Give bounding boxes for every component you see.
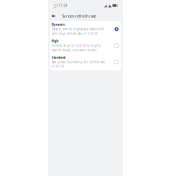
staticText: with a top refresh rate of 120 Hz: [52, 32, 98, 35]
staticText: smooth visuals, uses more power: [52, 48, 97, 52]
staticText: Refresh at up to 144 Hz for highly: [52, 44, 101, 47]
staticText: Standard: [52, 56, 66, 59]
staticText: 💬 11:28: [53, 3, 67, 7]
button[interactable]: Back: [51, 12, 57, 20]
staticText: Screen refresh rate: [62, 13, 96, 19]
button[interactable]: Standard: [50, 54, 121, 70]
button[interactable]: Dynamic: [50, 21, 121, 37]
staticText: Save power by limiting the refresh rate: [52, 60, 106, 64]
staticText: Dynamic: [52, 23, 65, 27]
staticText: High: [52, 39, 59, 43]
staticText: to 60 Hz: [52, 65, 64, 68]
staticText: Balance smooth display and battery life: [52, 27, 105, 31]
button[interactable]: High: [50, 37, 121, 54]
